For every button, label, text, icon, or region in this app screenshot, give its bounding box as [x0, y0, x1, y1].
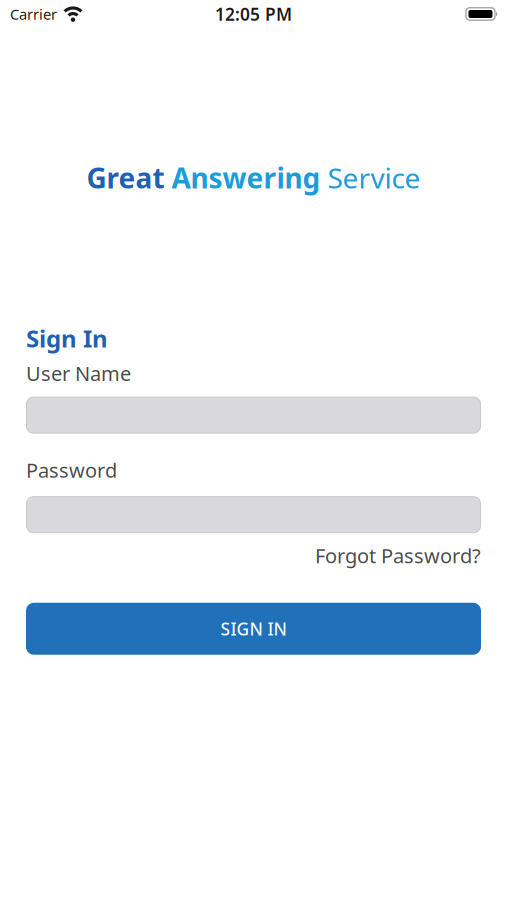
staticText: Password: [26, 457, 117, 483]
staticText: Service: [327, 159, 420, 196]
staticText: SIGN IN: [220, 617, 286, 640]
staticText: Great: [86, 159, 171, 196]
staticText: 12:05 PM: [215, 2, 292, 25]
staticText: Forgot Password?: [315, 542, 481, 569]
button[interactable]: Password: [26, 496, 481, 533]
staticText: Answering: [171, 159, 327, 196]
button[interactable]: Forgot Password?: [315, 542, 481, 569]
staticText: Carrier: [10, 4, 57, 24]
button[interactable]: SIGN IN: [26, 603, 481, 655]
staticText: User Name: [26, 360, 131, 387]
staticText: Sign In: [26, 322, 108, 354]
